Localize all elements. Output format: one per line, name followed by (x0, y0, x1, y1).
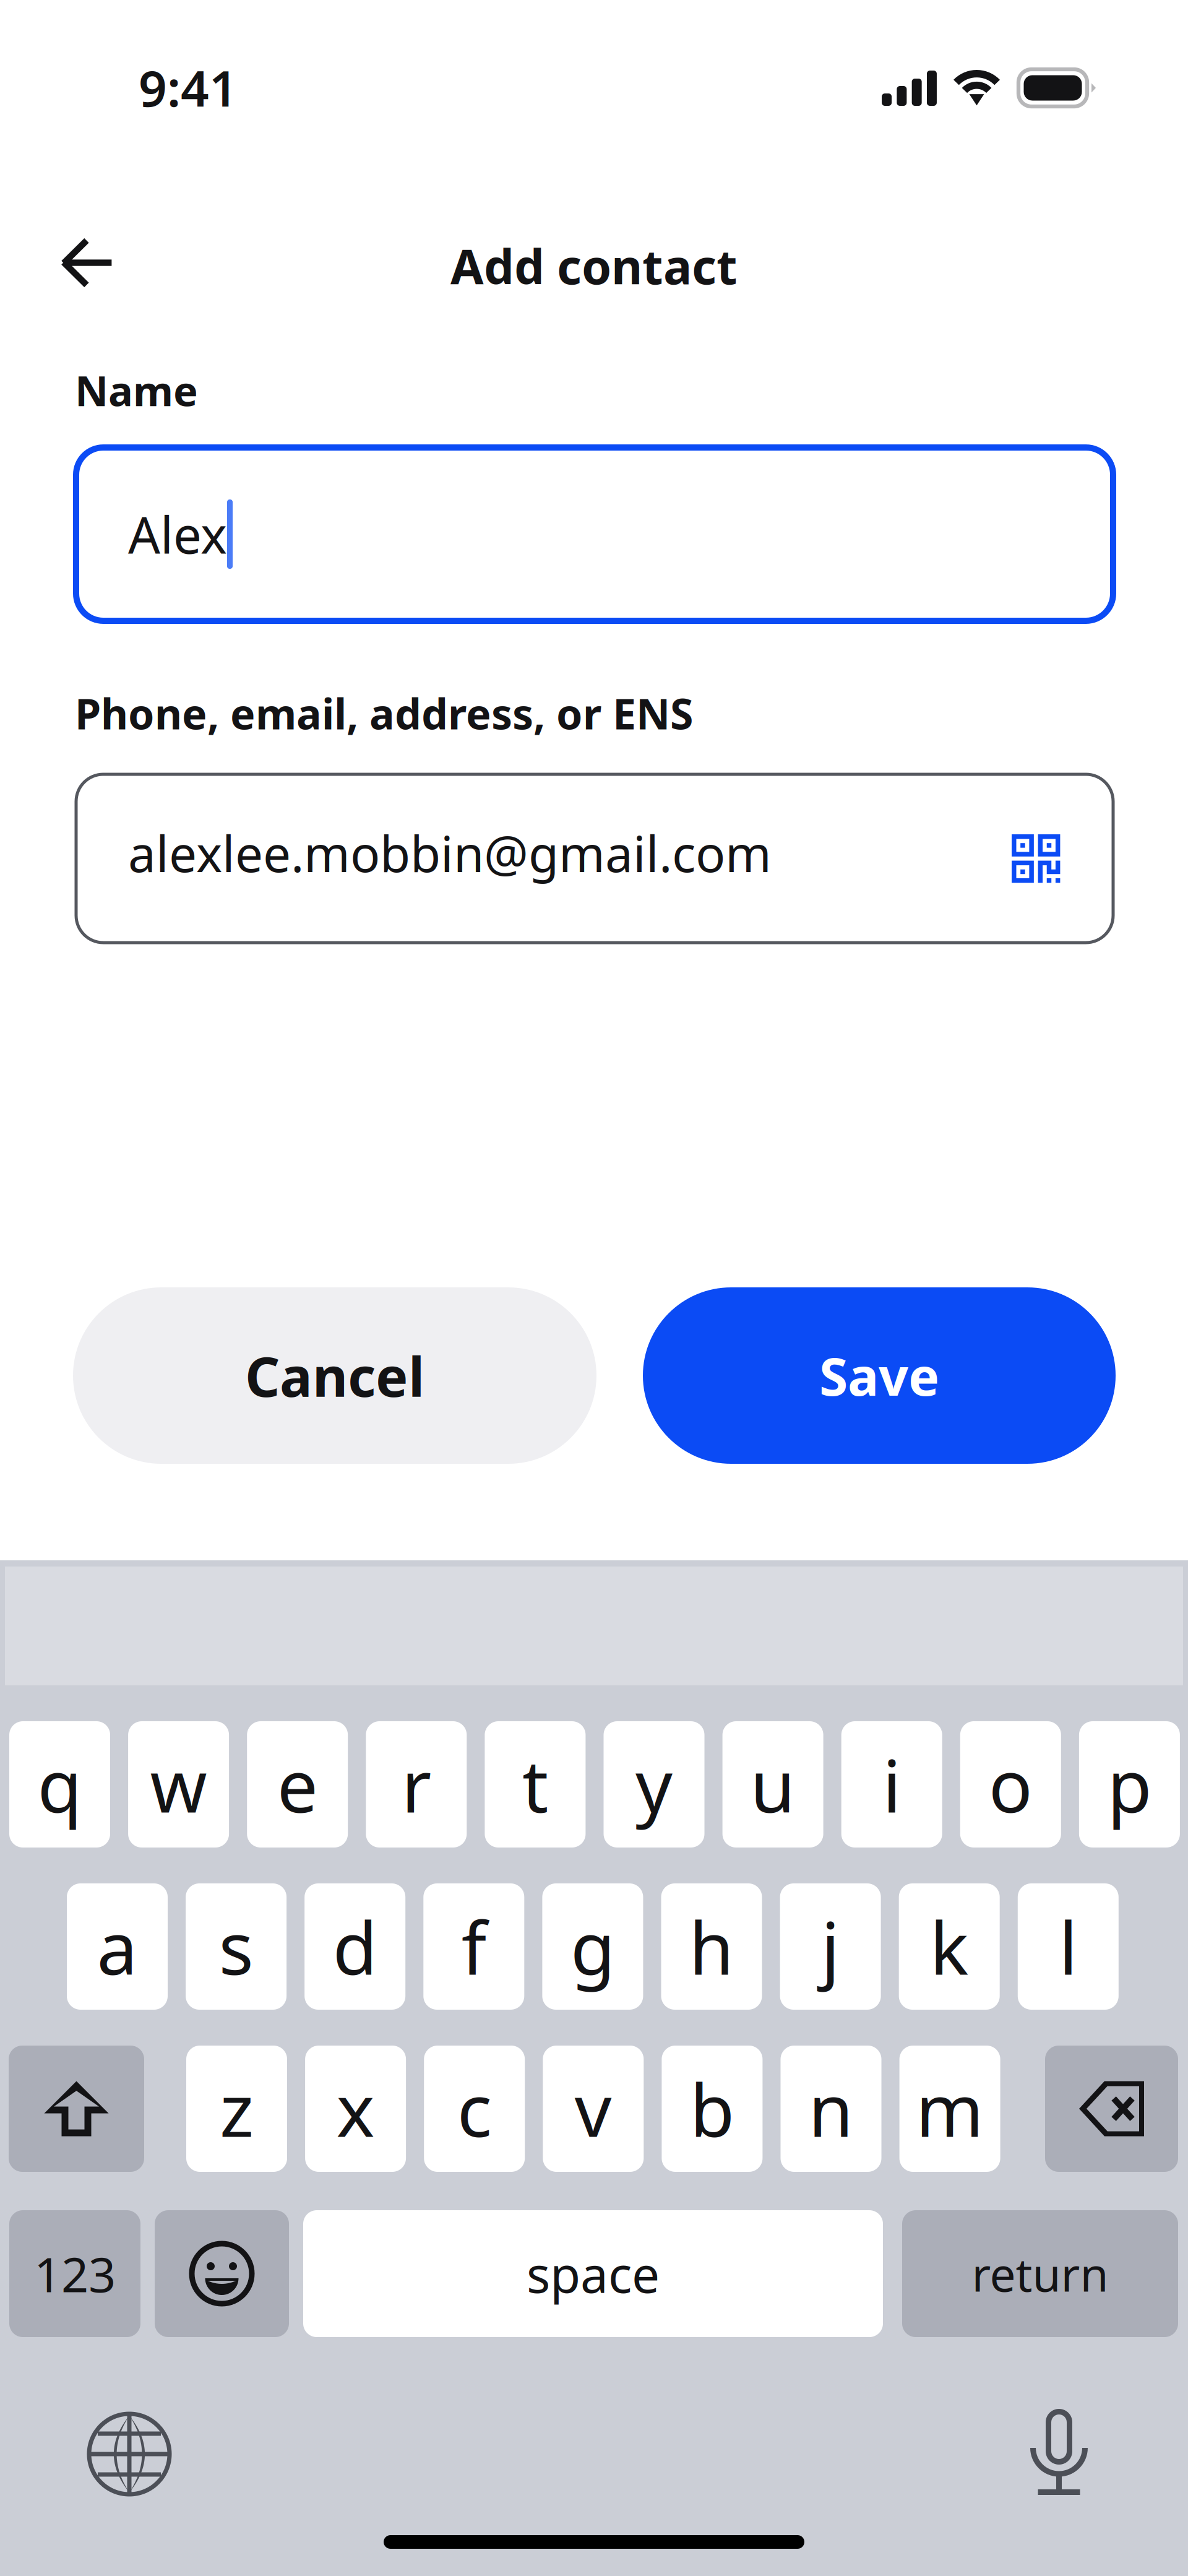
staticText: alexlee.mobbin@gmail.com (128, 820, 772, 886)
button[interactable]: Cancel (73, 1287, 596, 1464)
staticText: o (989, 1736, 1033, 1833)
button[interactable]: k (899, 1883, 1000, 2010)
staticText: y (635, 1736, 673, 1833)
staticText: Name (75, 363, 198, 417)
staticText: k (930, 1898, 969, 1995)
staticText: b (690, 2060, 734, 2157)
button[interactable]: Next keyboard (89, 2414, 170, 2494)
button[interactable]: Delete (1045, 2046, 1178, 2172)
staticText: Cancel (245, 1339, 424, 1412)
staticText: d (333, 1898, 377, 1995)
staticText: h (689, 1898, 734, 1995)
button[interactable]: Save (643, 1287, 1116, 1464)
button[interactable]: f (423, 1883, 524, 2010)
button[interactable]: w (128, 1721, 229, 1848)
button[interactable]: y (604, 1721, 704, 1848)
staticText: m (916, 2060, 984, 2157)
staticText: Alex (128, 501, 227, 568)
staticText: 9:41 (139, 54, 238, 120)
button[interactable]: 123 (9, 2210, 140, 2337)
staticText: e (277, 1736, 318, 1833)
staticText: x (336, 2060, 375, 2157)
staticText: space (527, 2241, 660, 2307)
button[interactable]: o (960, 1721, 1061, 1848)
button[interactable]: x (305, 2046, 406, 2172)
staticText: v (575, 2060, 612, 2157)
button[interactable]: e (247, 1721, 348, 1848)
button[interactable]: h (661, 1883, 762, 2010)
button[interactable]: Shift (9, 2046, 144, 2172)
staticText: s (219, 1898, 253, 1995)
staticText: c (457, 2060, 492, 2157)
staticText: return (972, 2243, 1108, 2304)
staticText: w (150, 1736, 207, 1833)
button[interactable]: t (485, 1721, 586, 1848)
button[interactable]: c (424, 2046, 525, 2172)
staticText: j (821, 1898, 840, 1995)
button[interactable]: n (781, 2046, 881, 2172)
button[interactable]: m (899, 2046, 1000, 2172)
staticText: u (750, 1736, 795, 1833)
button[interactable]: return (902, 2210, 1178, 2337)
button[interactable]: j (780, 1883, 881, 2010)
staticText: 123 (34, 2242, 116, 2305)
staticText: t (522, 1736, 548, 1833)
button[interactable]: i (841, 1721, 942, 1848)
button[interactable]: b (662, 2046, 763, 2172)
button[interactable]: Emoji (155, 2210, 289, 2337)
button[interactable]: d (305, 1883, 405, 2010)
button[interactable]: g (542, 1883, 643, 2010)
staticText: g (570, 1898, 615, 1995)
staticText: r (401, 1736, 431, 1833)
button[interactable]: Back (45, 222, 131, 304)
button[interactable]: z (186, 2046, 287, 2172)
button[interactable]: u (722, 1721, 823, 1848)
button[interactable]: v (543, 2046, 644, 2172)
button[interactable]: l (1018, 1883, 1119, 2010)
button[interactable]: r (366, 1721, 467, 1848)
button[interactable]: a (67, 1883, 168, 2010)
staticText: f (461, 1898, 486, 1995)
button[interactable]: p (1079, 1721, 1180, 1848)
staticText: p (1107, 1736, 1152, 1833)
button[interactable]: Scan QR code (1012, 834, 1060, 883)
staticText: Phone, email, address, or ENS (75, 685, 693, 741)
staticText: Save (819, 1341, 939, 1410)
staticText: a (97, 1898, 138, 1995)
staticText: Add contact (450, 234, 738, 298)
button[interactable]: q (9, 1721, 110, 1848)
staticText: z (220, 2060, 254, 2157)
staticText: q (37, 1736, 82, 1833)
staticText: n (808, 2060, 854, 2157)
button[interactable]: Dictate (1030, 2409, 1088, 2495)
button[interactable]: space (303, 2210, 883, 2337)
staticText: l (1059, 1898, 1077, 1995)
staticText: i (882, 1736, 901, 1833)
button[interactable]: s (186, 1883, 287, 2010)
